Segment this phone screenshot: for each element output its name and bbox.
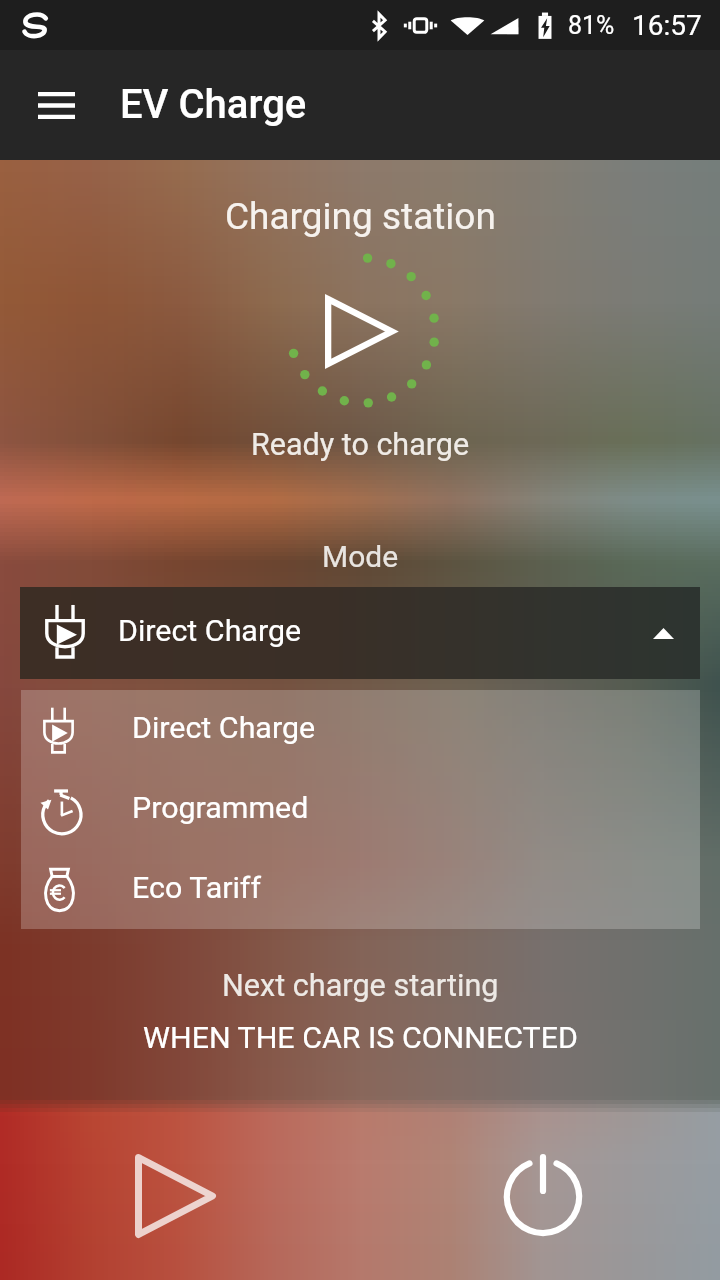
button[interactable]: Programmed — [21, 770, 700, 850]
staticText: Eco Tariff — [132, 870, 261, 906]
staticText: Programmed — [132, 790, 309, 826]
staticText: Mode — [322, 539, 399, 574]
button[interactable]: Direct Charge — [21, 690, 700, 770]
staticText: 16:57 — [632, 9, 702, 42]
staticText: Direct Charge — [132, 710, 316, 746]
staticText: 81% — [568, 11, 615, 40]
staticText: Charging station — [225, 195, 496, 238]
staticText: WHEN THE CAR IS CONNECTED — [143, 1020, 578, 1056]
button[interactable]: Direct Charge — [20, 587, 700, 679]
button[interactable]: Open navigation menu — [20, 69, 92, 141]
button[interactable]: Start charging — [0, 1097, 360, 1280]
button[interactable]: Eco Tariff — [21, 850, 700, 929]
other: App logo — [20, 10, 50, 40]
staticText: Next charge starting — [222, 968, 499, 1004]
button[interactable]: Power off — [360, 1097, 720, 1280]
staticText: Ready to charge — [251, 427, 470, 463]
staticText: Direct Charge — [118, 613, 302, 649]
staticText: EV Charge — [120, 81, 307, 128]
